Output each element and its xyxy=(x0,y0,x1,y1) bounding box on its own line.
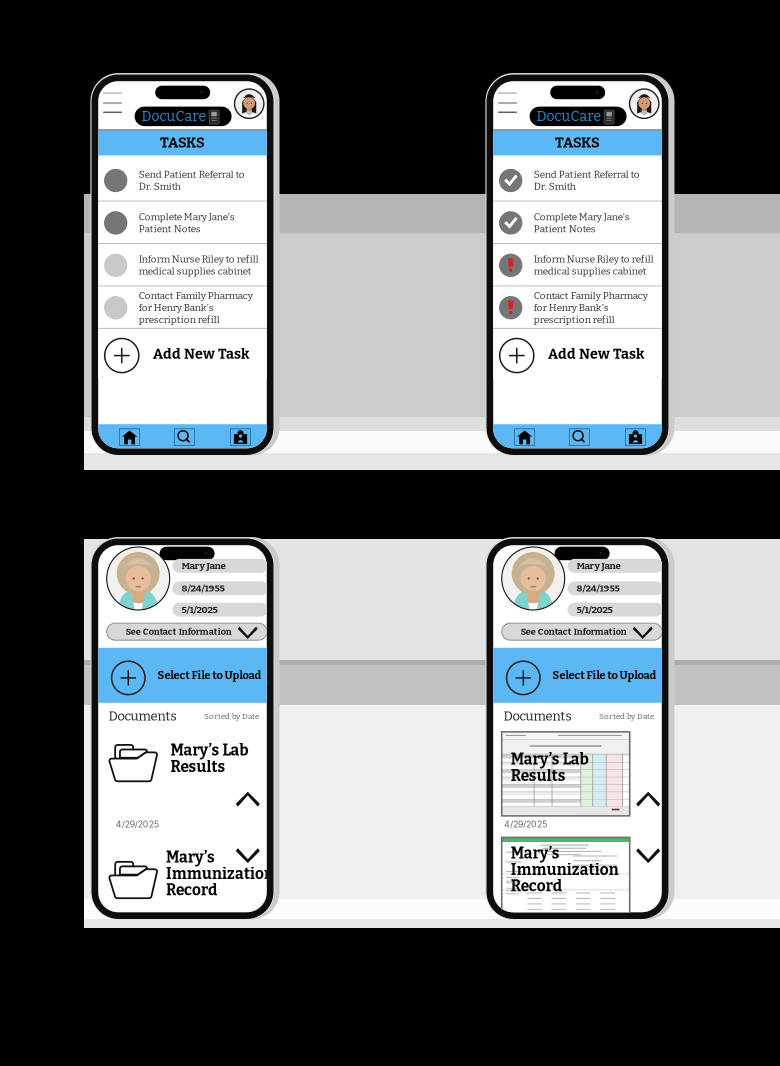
staticText: Mary’s xyxy=(166,848,215,867)
staticText: Immunization xyxy=(166,865,274,883)
button[interactable]: Expand xyxy=(236,851,260,866)
staticText: Inform Nurse Riley to refill xyxy=(139,253,259,265)
button[interactable]: Contact Family Pharmacy xyxy=(493,286,662,329)
button[interactable]: Add New Task xyxy=(493,329,662,379)
staticText: 8/24/1955 xyxy=(576,582,619,594)
staticText: 5/1/2025 xyxy=(181,604,217,615)
staticText: prescription refill xyxy=(139,314,220,326)
staticText: Add New Task xyxy=(548,345,644,362)
button[interactable]: DocuCare xyxy=(135,107,232,126)
staticText: Inform Nurse Riley to refill xyxy=(534,253,654,265)
staticText: TASKS xyxy=(555,134,600,151)
button[interactable]: Send Patient Referral to xyxy=(493,159,662,202)
staticText: Documents xyxy=(503,708,571,724)
staticText: 5/1/2025 xyxy=(576,604,612,615)
staticText: Complete Mary Jane’s xyxy=(139,211,235,223)
staticText: Dr. Smith xyxy=(534,181,576,192)
staticText: DocuCare xyxy=(537,108,602,125)
button[interactable]: Contact Family Pharmacy xyxy=(98,286,267,329)
button[interactable]: Profile xyxy=(234,89,264,118)
button[interactable]: Inform Nurse Riley to refill xyxy=(98,244,267,286)
button[interactable]: Home xyxy=(515,429,535,445)
button[interactable]: Account xyxy=(625,429,645,445)
staticText: Send Patient Referral to xyxy=(139,169,245,180)
staticText: Mary Jane xyxy=(576,560,620,572)
staticText: 8/24/1955 xyxy=(181,582,224,594)
staticText: Mary’s Lab xyxy=(170,741,248,760)
staticText: Select File to Upload xyxy=(553,669,657,682)
staticText: DocuCare xyxy=(142,108,207,125)
button[interactable]: Complete Mary Jane’s xyxy=(493,202,662,244)
staticText: 4/29/2025 xyxy=(504,819,547,829)
button[interactable]: Inform Nurse Riley to refill xyxy=(493,244,662,286)
staticText: Record xyxy=(166,881,217,899)
staticText: medical supplies cabinet xyxy=(139,265,252,277)
staticText: Patient Notes xyxy=(139,223,201,235)
button[interactable]: Collapse xyxy=(236,792,260,807)
staticText: Sorted by Date xyxy=(204,711,259,721)
button[interactable]: Collapse xyxy=(636,792,660,807)
staticText: See Contact Information xyxy=(126,626,232,637)
staticText: Contact Family Pharmacy xyxy=(534,290,648,302)
button[interactable]: Complete Mary Jane’s xyxy=(98,202,267,244)
button[interactable]: Menu xyxy=(103,90,125,116)
staticText: prescription refill xyxy=(534,314,615,326)
button[interactable]: Select File to Upload xyxy=(98,648,267,703)
staticText: Results xyxy=(511,767,566,785)
button[interactable]: Select File to Upload xyxy=(493,648,662,703)
staticText: See Contact Information xyxy=(521,626,627,637)
button[interactable]: Account xyxy=(230,429,250,445)
staticText: Complete Mary Jane’s xyxy=(534,211,630,223)
button[interactable]: Profile xyxy=(629,89,659,118)
staticText: Send Patient Referral to xyxy=(534,169,640,180)
button[interactable]: Home xyxy=(120,429,140,445)
button[interactable]: DocuCare xyxy=(530,107,627,126)
staticText: medical supplies cabinet xyxy=(534,265,647,277)
button[interactable]: Add New Task xyxy=(98,329,267,379)
staticText: Record xyxy=(511,877,562,895)
staticText: for Henry Bank’s xyxy=(534,302,609,314)
button[interactable]: Search xyxy=(569,429,589,445)
staticText: Mary Jane xyxy=(181,560,225,572)
staticText: Add New Task xyxy=(153,345,249,362)
staticText: Sorted by Date xyxy=(599,711,654,721)
staticText: Mary’s Lab xyxy=(511,750,589,769)
staticText: for Henry Bank’s xyxy=(139,302,214,314)
staticText: Immunization xyxy=(511,861,619,879)
button[interactable]: Menu xyxy=(498,90,520,116)
staticText: Dr. Smith xyxy=(139,181,181,192)
staticText: 4/29/2025 xyxy=(116,819,159,829)
staticText: TASKS xyxy=(160,134,205,151)
staticText: Contact Family Pharmacy xyxy=(139,290,253,302)
button[interactable]: Expand xyxy=(636,851,660,866)
button[interactable]: Send Patient Referral to xyxy=(98,159,267,202)
button[interactable]: See Contact Information xyxy=(107,623,267,640)
button[interactable]: Search xyxy=(174,429,194,445)
button[interactable]: See Contact Information xyxy=(502,623,662,640)
staticText: Results xyxy=(170,758,225,776)
staticText: Select File to Upload xyxy=(158,669,262,682)
staticText: Mary’s xyxy=(511,844,560,863)
staticText: Documents xyxy=(108,708,176,724)
staticText: Patient Notes xyxy=(534,223,596,235)
